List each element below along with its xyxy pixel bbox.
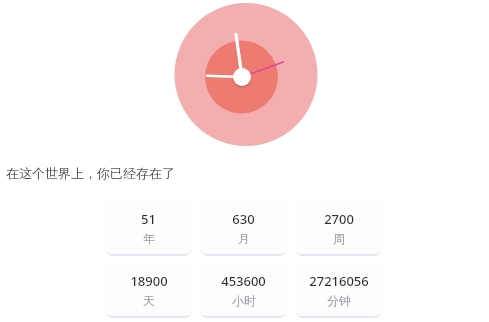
button[interactable]: 18900: [104, 264, 193, 316]
button[interactable]: Clock: [0, 0, 489, 150]
staticText: 27216056: [309, 272, 369, 290]
staticText: 18900: [130, 272, 168, 290]
button[interactable]: 2700: [294, 202, 383, 254]
staticText: 天: [143, 293, 155, 308]
staticText: 630: [232, 210, 255, 228]
staticText: 453600: [221, 272, 266, 290]
staticText: 在这个世界上，你已经存在了: [6, 165, 175, 181]
staticText: 分钟: [327, 293, 351, 308]
staticText: 51: [141, 210, 156, 228]
staticText: 小时: [232, 293, 256, 308]
button[interactable]: 27216056: [294, 264, 383, 316]
staticText: 年: [143, 231, 155, 246]
button[interactable]: 51: [104, 202, 193, 254]
staticText: 周: [333, 231, 345, 246]
button[interactable]: 630: [199, 202, 288, 254]
staticText: 月: [238, 231, 250, 246]
staticText: 2700: [324, 210, 354, 228]
button[interactable]: 453600: [199, 264, 288, 316]
